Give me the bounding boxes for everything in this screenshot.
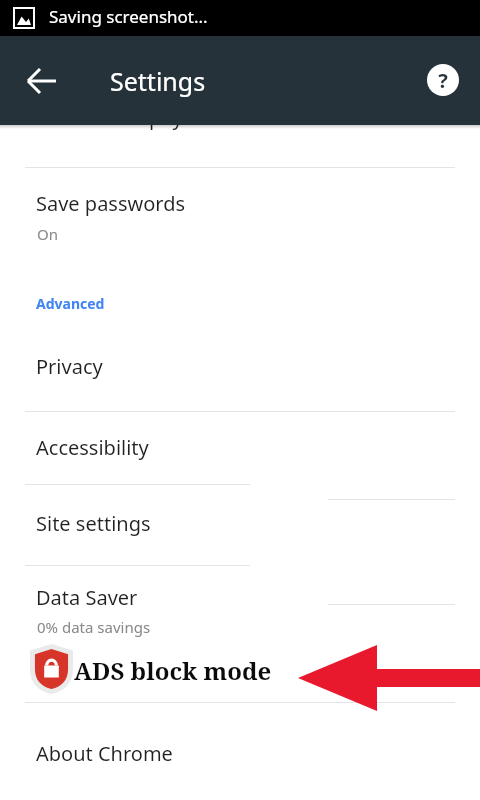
button[interactable]: Privacy: [0, 335, 480, 405]
staticText: Accessibility: [36, 434, 149, 461]
staticText: Autofill and payments: [36, 104, 242, 131]
button[interactable]: Data Saver: [0, 572, 480, 644]
button[interactable]: Accessibility: [0, 418, 480, 484]
button[interactable]: Save passwords: [0, 180, 480, 252]
staticText: On: [37, 224, 58, 244]
button[interactable]: ADS block mode: [0, 640, 480, 702]
staticText: Settings: [110, 64, 206, 98]
staticText: About Chrome: [36, 740, 173, 767]
button[interactable]: Help: [426, 63, 460, 97]
staticText: Advanced: [36, 294, 105, 313]
staticText: ADS block mode: [74, 654, 272, 687]
staticText: Saving screenshot...: [49, 5, 208, 28]
button[interactable]: Site settings: [0, 492, 480, 562]
button[interactable]: About Chrome: [0, 710, 480, 780]
button[interactable]: Autofill and payments: [0, 96, 480, 156]
staticText: ?: [438, 67, 448, 94]
button[interactable]: Back: [20, 57, 68, 105]
staticText: Data Saver: [36, 584, 138, 611]
staticText: 0% data savings: [37, 617, 151, 637]
staticText: Privacy: [36, 353, 103, 380]
staticText: Site settings: [36, 510, 151, 537]
staticText: Save passwords: [36, 190, 186, 217]
